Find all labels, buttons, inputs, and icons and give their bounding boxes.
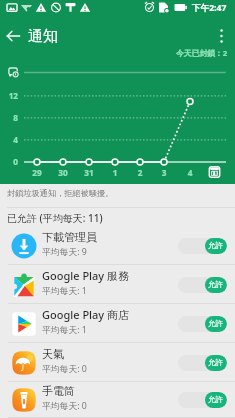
staticText: Google Play 服務 [42,268,130,283]
button[interactable]: Google Play 商店 [0,304,235,343]
button[interactable]: Allow notifications toggle [178,316,227,332]
staticText: 允許 [208,280,224,290]
staticText: Google Play 商店 [42,307,130,322]
button[interactable]: Allow notifications toggle [178,238,227,254]
staticText: 平均每天: 1 [42,324,87,336]
staticText: 平均每天: 0 [42,400,87,412]
staticText: 4 [0,134,18,145]
button[interactable]: 下載管理員 [0,226,235,265]
staticText: 8 [0,112,18,123]
staticText: 平均每天: 1 [42,285,87,297]
button[interactable]: Google Play 服務 [0,265,235,304]
staticText: 允許 [208,319,224,329]
staticText: 平均每天: 0 [42,363,87,375]
staticText: 平均每天: 9 [42,246,87,258]
staticText: 天氣 [42,347,64,361]
staticText: 30 [51,167,75,178]
button[interactable]: 手電筒 [0,382,235,418]
staticText: 今天已封鎖：2 [176,48,228,59]
button[interactable]: Allow notifications toggle [178,392,227,408]
staticText: 1 [103,167,127,178]
button[interactable]: Allow notifications toggle [178,355,227,371]
staticText: 下載管理員 [42,230,97,244]
staticText: 封鎖垃圾通知，拒絕被騷擾。 [7,188,114,198]
staticText: 4 [178,167,202,178]
staticText: 12 [0,90,18,101]
staticText: 31 [77,167,101,178]
staticText: 允許 [208,241,224,251]
staticText: 通知 [28,27,58,46]
staticText: 下午2:47 [192,2,227,14]
staticText: 3 [152,167,176,178]
staticText: 允許 [208,358,224,368]
button[interactable]: More options [209,23,235,49]
staticText: 手電筒 [42,384,75,398]
staticText: 0 [0,156,18,167]
button[interactable]: 天氣 [0,343,235,382]
staticText: 允許 [208,395,224,405]
button[interactable]: Allow notifications toggle [178,277,227,293]
button[interactable]: Back [1,23,27,49]
staticText: 2 [128,167,152,178]
staticText: 29 [25,167,49,178]
staticText: 已允許 (平均每天: 11) [7,211,103,225]
